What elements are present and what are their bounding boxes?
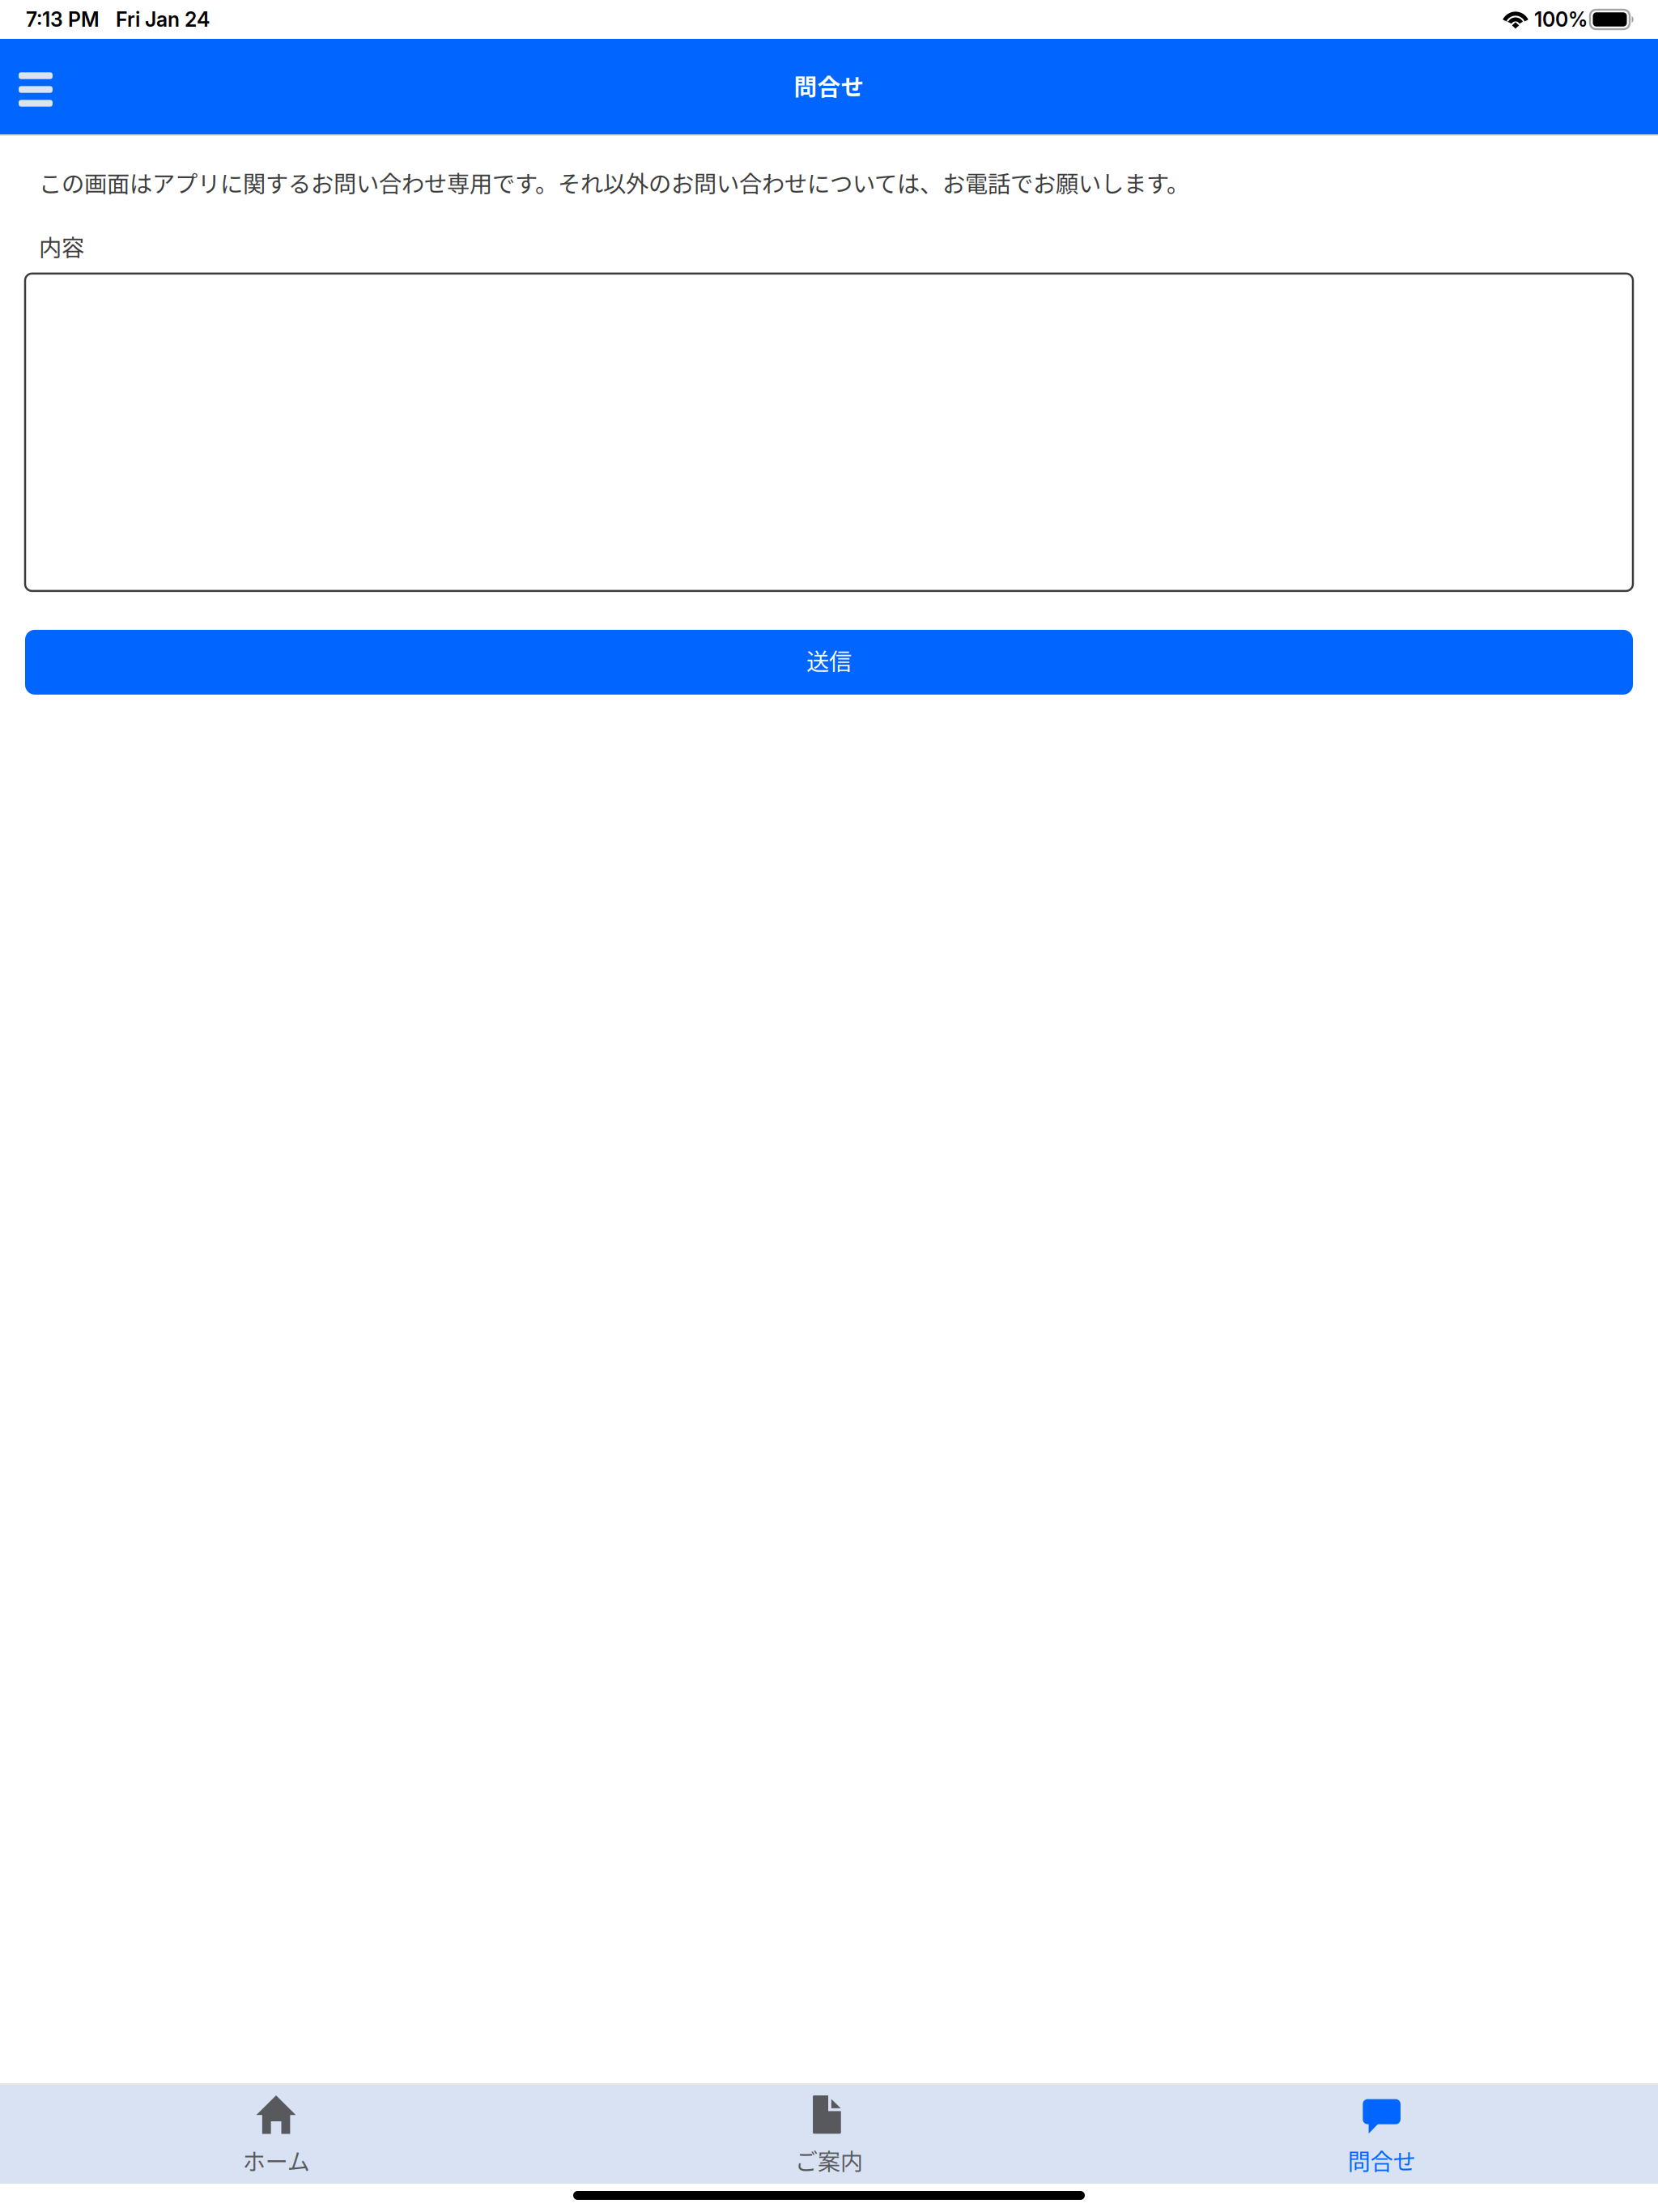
staticText: 7:13 PM (26, 7, 100, 32)
staticText: ホーム (243, 2144, 310, 2177)
staticText: ご案内 (795, 2144, 863, 2177)
button[interactable]: Menu (5, 46, 66, 127)
staticText: 問合せ (1348, 2144, 1416, 2177)
button[interactable]: ホーム (0, 2085, 553, 2184)
button[interactable]: ご案内 (553, 2085, 1105, 2184)
button[interactable]: 内容 (25, 274, 1633, 591)
staticText: 送信 (806, 644, 852, 677)
staticText: Fri Jan 24 (116, 7, 210, 32)
button[interactable]: 送信 (25, 630, 1633, 695)
staticText: この画面はアプリに関するお問い合わせ専用です。それ以外のお問い合わせについては、… (39, 166, 1189, 199)
staticText: 100% (1534, 7, 1588, 32)
staticText: 内容 (39, 230, 84, 263)
button[interactable]: 問合せ (1105, 2085, 1658, 2184)
staticText: 問合せ (794, 69, 864, 102)
